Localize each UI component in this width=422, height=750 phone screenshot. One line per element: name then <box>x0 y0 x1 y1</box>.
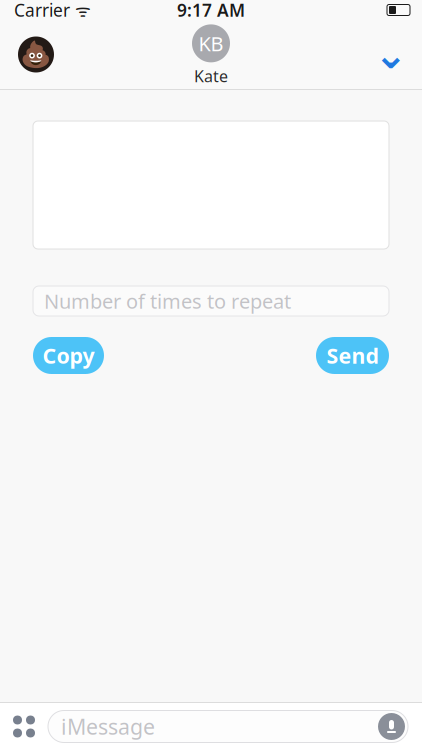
button[interactable]: App icon <box>14 28 58 80</box>
staticText: 9:17 AM <box>177 0 245 21</box>
button[interactable]: KB <box>192 22 230 87</box>
staticText: ⌄ <box>374 32 408 77</box>
staticText: KB <box>198 30 223 57</box>
staticText: Kate <box>194 65 228 87</box>
staticText: 💩 <box>20 40 52 69</box>
button[interactable]: Apps <box>0 703 48 749</box>
staticText: Send <box>326 341 378 370</box>
staticText: Number of times to repeat <box>44 288 291 314</box>
button[interactable]: Collapse <box>368 28 414 80</box>
staticText: Carrier ᯤ <box>14 0 91 21</box>
button[interactable]: Copy <box>33 337 104 374</box>
staticText: iMessage <box>61 712 155 741</box>
staticText: Copy <box>42 341 94 370</box>
button[interactable]: iMessage <box>48 710 408 742</box>
button[interactable]: Send <box>316 337 389 374</box>
